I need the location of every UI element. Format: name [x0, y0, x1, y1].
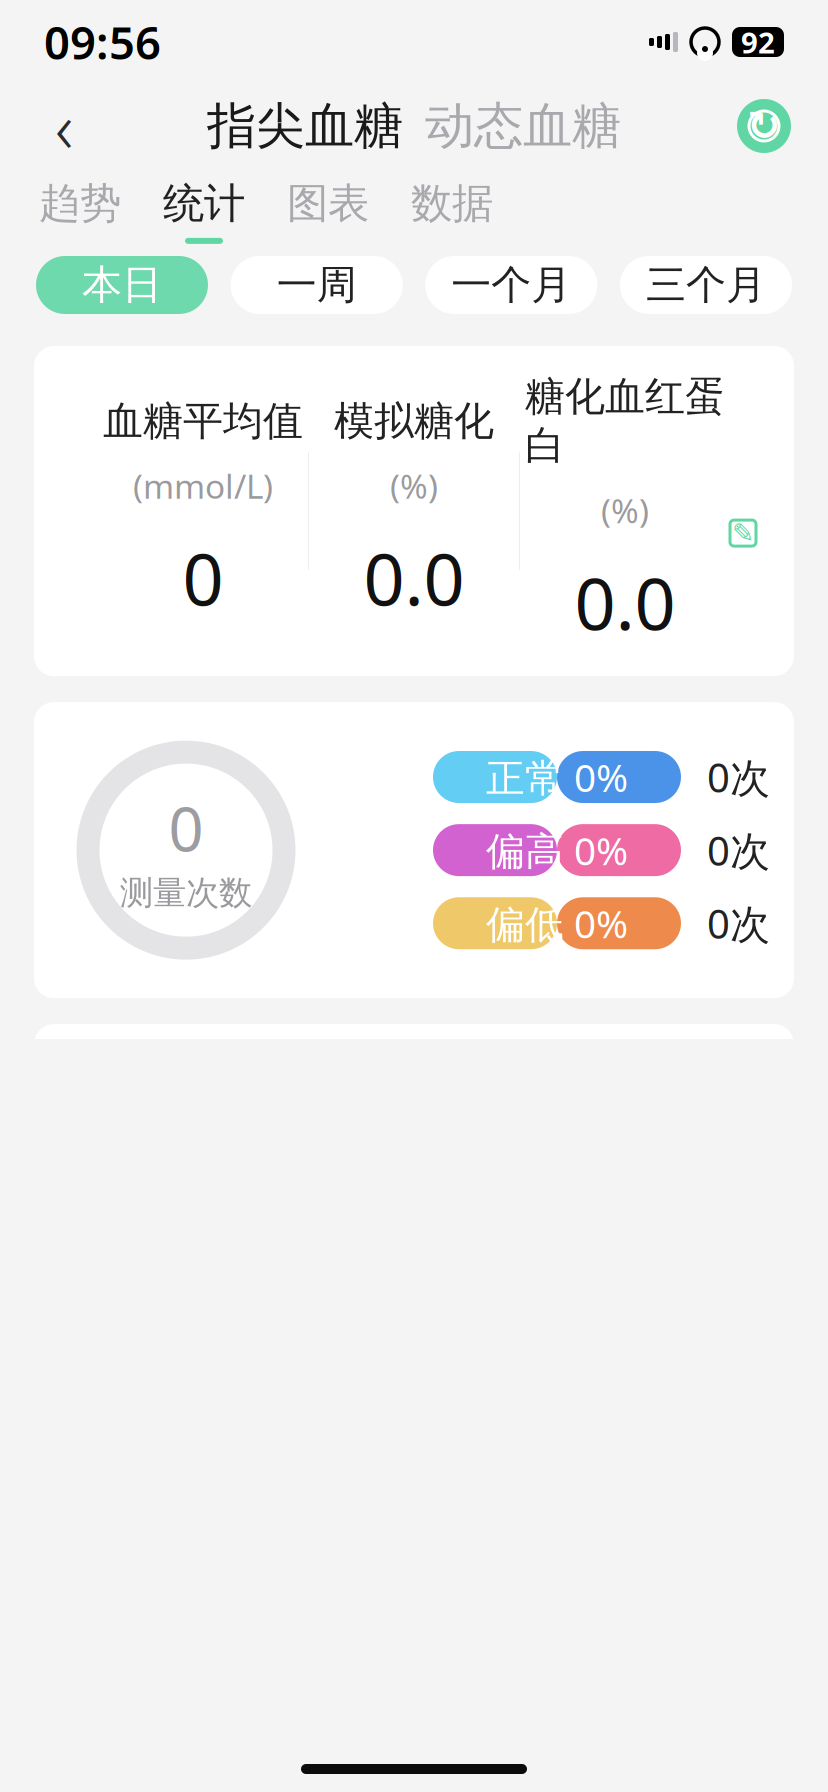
staticText: 0次: [707, 750, 770, 804]
staticText: 数据: [411, 178, 493, 229]
staticText: 偏高 0%: [486, 824, 628, 876]
staticText: 测量次数: [120, 872, 252, 913]
button[interactable]: 图表: [266, 172, 390, 250]
staticText: 92: [741, 22, 775, 61]
staticText: 趋势: [39, 178, 121, 229]
button[interactable]: 数据: [390, 172, 514, 250]
staticText: 模拟糖化: [334, 397, 494, 446]
button[interactable]: Back: [32, 94, 96, 158]
button[interactable]: 编辑糖化血红蛋白: [720, 510, 766, 556]
staticText: 一周: [277, 260, 357, 309]
button[interactable]: 统计: [142, 172, 266, 250]
staticText: 一个月: [451, 260, 571, 309]
staticText: 0次: [707, 897, 770, 950]
button[interactable]: 三个月: [620, 256, 792, 314]
staticText: (%): [390, 464, 438, 508]
staticText: 糖化血红蛋白: [525, 372, 725, 470]
staticText: 0.0: [574, 554, 675, 650]
staticText: ↻: [747, 103, 781, 149]
staticText: 0: [182, 530, 223, 626]
staticText: 动态血糖: [425, 96, 621, 156]
button[interactable]: Refresh: [732, 94, 796, 158]
staticText: (mmol/L): [133, 464, 273, 508]
staticText: 图表: [287, 178, 369, 229]
staticText: 本日: [82, 260, 162, 309]
staticText: 统计: [163, 178, 245, 229]
staticText: 三个月: [646, 260, 766, 309]
button[interactable]: 趋势: [18, 172, 142, 250]
button[interactable]: 指尖血糖: [207, 96, 403, 156]
staticText: 指尖血糖: [207, 96, 403, 156]
staticText: 0次: [707, 824, 770, 877]
staticText: ‹: [55, 80, 73, 172]
button[interactable]: 一周: [231, 256, 403, 314]
staticText: 血糖平均值: [103, 397, 303, 446]
staticText: (%): [601, 488, 649, 533]
button[interactable]: 一个月: [425, 256, 597, 314]
staticText: 09:56: [44, 12, 161, 72]
staticText: 0: [168, 787, 203, 868]
staticText: 0.0: [363, 530, 464, 626]
staticText: 正常 0%: [486, 751, 628, 803]
button[interactable]: 本日: [36, 256, 208, 314]
button[interactable]: 动态血糖: [425, 96, 621, 156]
staticText: 偏低 0%: [486, 898, 628, 949]
staticText: ✎: [732, 518, 754, 548]
